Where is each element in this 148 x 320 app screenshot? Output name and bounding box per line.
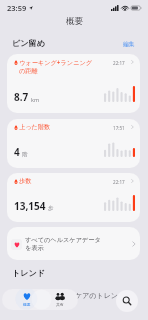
staticText: ピン留め — [12, 38, 45, 48]
staticText: 共有 — [56, 302, 64, 307]
button[interactable]: すべてのヘルスケアデータ を表示 — [7, 227, 140, 260]
staticText: 歩 — [48, 205, 54, 212]
staticText: 上った階数 — [19, 123, 113, 131]
staticText: km — [31, 96, 40, 103]
staticText: 22:17 — [113, 179, 125, 185]
staticText: 編集 — [123, 40, 135, 47]
button[interactable]: ウォーキング+ランニング の距離 — [7, 54, 140, 113]
staticText: 歩数 — [19, 177, 113, 185]
staticText: すべてのヘルスケアデータ を表示 — [25, 236, 132, 252]
staticText: 階 — [22, 151, 28, 158]
staticText: 23:59 — [7, 3, 27, 13]
staticText: 4 — [14, 145, 20, 159]
staticText: 8.7 — [14, 90, 29, 104]
button[interactable]: 共有 — [46, 289, 74, 310]
button[interactable]: 編集 — [123, 38, 135, 45]
staticText: ケアのトレンド — [75, 291, 126, 300]
staticText: 13,154 — [14, 199, 46, 213]
button[interactable]: 上った階数 — [7, 119, 140, 168]
staticText: 22:17 — [113, 60, 125, 66]
staticText: 概要 — [66, 16, 83, 27]
staticText: 17:51 — [113, 125, 125, 131]
button[interactable]: 歩数 — [7, 173, 140, 222]
staticText: トレンド — [12, 268, 46, 278]
staticText: ウォーキング+ランニング の距離 — [19, 58, 113, 75]
button[interactable]: 検索 — [116, 290, 138, 312]
button[interactable]: 概要 — [13, 289, 41, 310]
staticText: 概要 — [23, 302, 31, 307]
